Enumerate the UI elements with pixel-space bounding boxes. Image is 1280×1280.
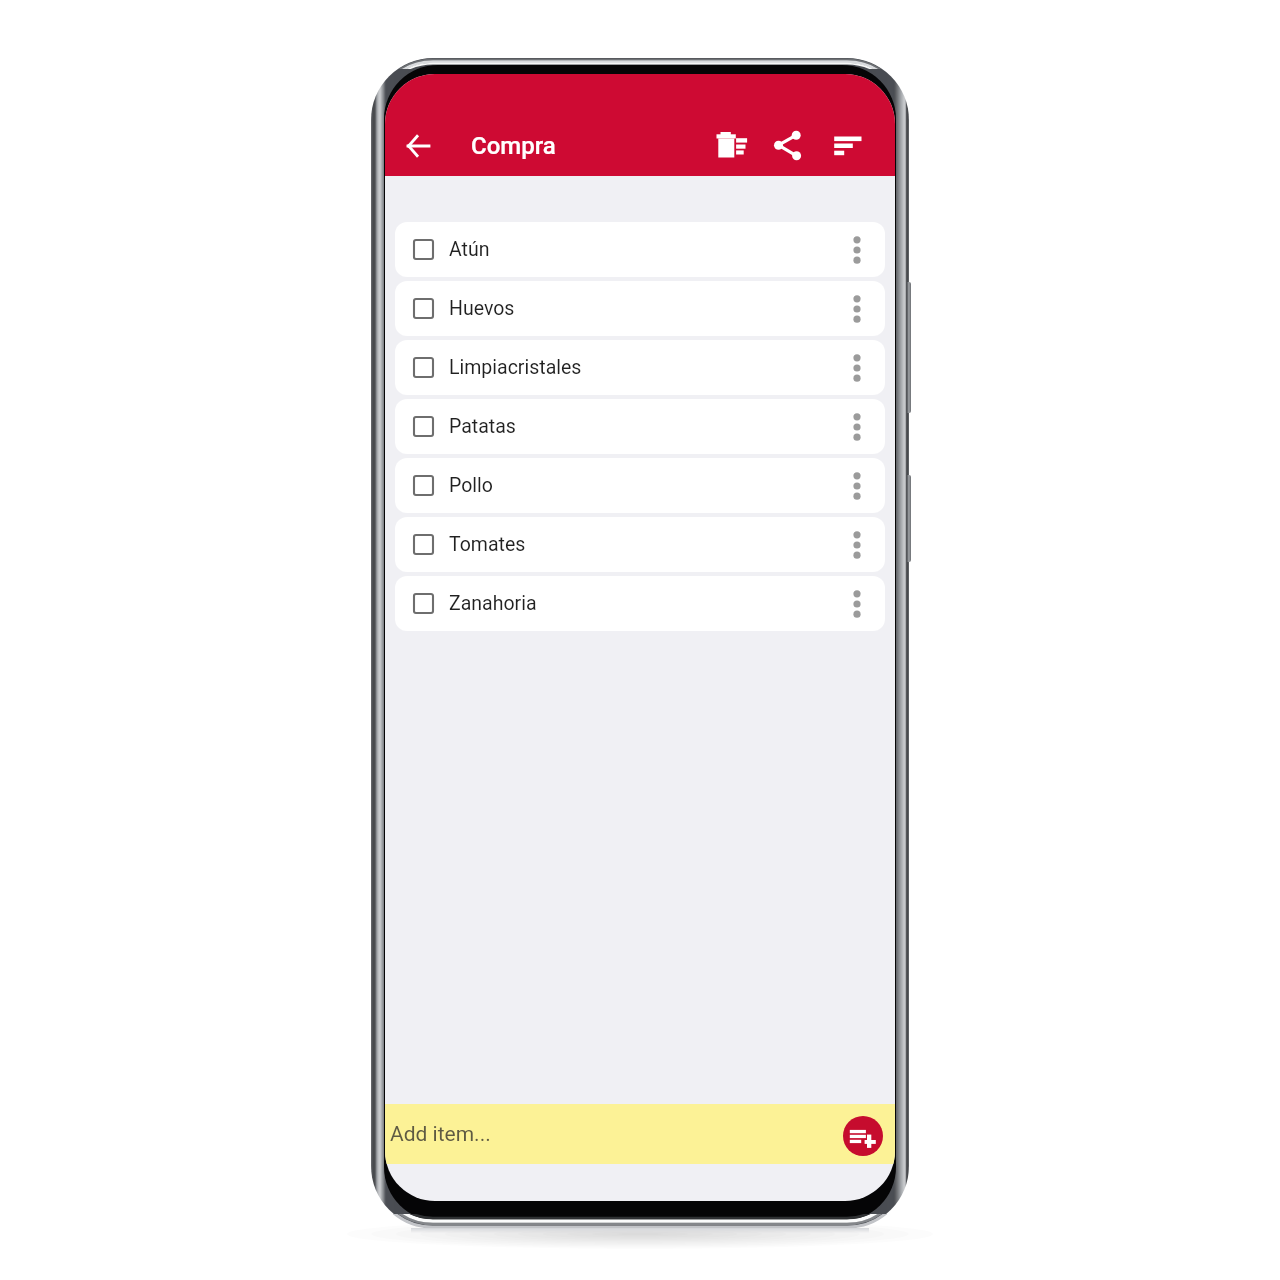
- button[interactable]: Huevos: [395, 281, 885, 336]
- staticText: Huevos: [449, 297, 515, 320]
- button[interactable]: Pollo: [395, 458, 885, 513]
- button[interactable]: More options: [835, 228, 879, 272]
- button[interactable]: More options: [835, 582, 879, 626]
- button[interactable]: Sort: [824, 122, 872, 170]
- staticText: Atún: [449, 238, 490, 261]
- button[interactable]: More options: [835, 464, 879, 508]
- button[interactable]: More options: [835, 405, 879, 449]
- button[interactable]: Add item...: [385, 1104, 829, 1164]
- staticText: Zanahoria: [449, 592, 537, 615]
- staticText: Patatas: [449, 415, 516, 438]
- staticText: Add item...: [390, 1122, 491, 1147]
- button[interactable]: Patatas: [395, 399, 885, 454]
- button[interactable]: More options: [835, 287, 879, 331]
- button[interactable]: Atún: [395, 222, 885, 277]
- button[interactable]: Add item: [843, 1116, 883, 1156]
- button[interactable]: Share: [766, 122, 814, 170]
- button[interactable]: More options: [835, 523, 879, 567]
- staticText: Limpiacristales: [449, 356, 582, 379]
- button[interactable]: More options: [835, 346, 879, 390]
- staticText: Tomates: [449, 533, 526, 556]
- button[interactable]: Tomates: [395, 517, 885, 572]
- button[interactable]: Back: [394, 122, 442, 170]
- button[interactable]: Limpiacristales: [395, 340, 885, 395]
- staticText: Pollo: [449, 474, 493, 497]
- button[interactable]: Zanahoria: [395, 576, 885, 631]
- button[interactable]: Delete all items: [708, 122, 756, 170]
- staticText: Compra: [471, 132, 556, 160]
